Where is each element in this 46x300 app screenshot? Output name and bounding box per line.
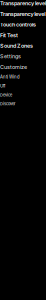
staticText: Transparency level xyxy=(0,0,46,7)
staticText: Off xyxy=(0,83,6,89)
staticText: Transparency level xyxy=(0,11,45,17)
staticText: Touch controls xyxy=(0,21,36,28)
staticText: Device xyxy=(0,93,12,97)
staticText: Sound Zones xyxy=(0,42,33,49)
staticText: Anti Wind xyxy=(0,74,20,79)
staticText: Customize xyxy=(0,64,27,70)
staticText: Settings xyxy=(0,53,21,60)
staticText: Discover xyxy=(0,101,16,106)
staticText: Fit Test xyxy=(0,32,18,38)
